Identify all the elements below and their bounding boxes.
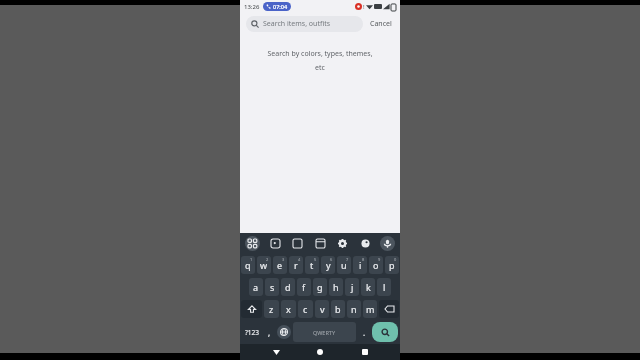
button[interactable]: Search [372,322,398,342]
button[interactable]: a [249,278,263,296]
staticText: n [351,303,357,315]
button[interactable]: b [331,300,345,318]
staticText: 3 [282,257,285,262]
staticText: 1 [250,257,253,262]
button[interactable]: Voice input [380,236,395,251]
staticText: e [277,259,283,271]
button[interactable]: Recents [356,344,374,360]
button[interactable]: Change language [277,325,291,339]
staticText: ! [363,3,365,11]
button[interactable]: ?123 [242,322,261,342]
button[interactable]: o [369,256,383,274]
staticText: d [285,281,291,293]
button[interactable]: g [313,278,327,296]
staticText: 0 [394,257,397,262]
button[interactable]: Themes [358,236,373,251]
button[interactable]: Shift [241,300,262,318]
staticText: x [286,303,291,315]
button[interactable]: v [315,300,329,318]
button[interactable]: GIF [290,236,305,251]
staticText: 4 [298,257,301,262]
button[interactable]: d [281,278,295,296]
button[interactable]: p [385,256,399,274]
staticText: l [383,281,386,293]
staticText: ?123 [245,328,259,337]
button[interactable]: Search items, outfits [246,16,363,32]
staticText: p [389,259,395,271]
button[interactable]: Emoji [263,322,275,342]
staticText: etc [315,63,325,73]
staticText: Search items, outfits [263,19,331,29]
button[interactable]: x [281,300,296,318]
staticText: 8 [362,257,365,262]
button[interactable]: u [337,256,351,274]
staticText: s [270,281,275,293]
staticText: c [303,303,308,315]
button[interactable]: Cancel [368,17,394,31]
button[interactable]: Home [311,344,329,360]
button[interactable]: c [298,300,313,318]
button[interactable]: w [257,256,271,274]
staticText: g [317,281,323,293]
staticText: q [245,259,251,271]
staticText: b [335,303,341,315]
staticText: QWERTY [313,329,336,336]
button[interactable]: Sticker [268,236,283,251]
staticText: k [366,281,371,293]
staticText: Cancel [370,19,392,29]
button[interactable]: m [363,300,377,318]
button[interactable]: n [347,300,361,318]
staticText: w [260,259,268,271]
button[interactable]: Back [267,344,285,360]
staticText: a [253,281,259,293]
staticText: y [326,259,331,271]
button[interactable]: y [321,256,335,274]
staticText: r [294,259,298,271]
button[interactable]: l [377,278,391,296]
button[interactable]: h [329,278,343,296]
staticText: 9 [378,257,381,262]
staticText: 13:26 [244,3,260,11]
staticText: h [333,281,339,293]
button[interactable]: r [289,256,303,274]
staticText: j [351,281,354,293]
button[interactable]: j [345,278,359,296]
button[interactable]: k [361,278,375,296]
staticText: u [341,259,347,271]
staticText: m [366,303,375,315]
button[interactable]: f [297,278,311,296]
button[interactable]: t [305,256,319,274]
button[interactable]: Apps [245,236,260,251]
button[interactable]: q [241,256,255,274]
staticText: o [373,259,379,271]
staticText: t [310,259,314,271]
button[interactable]: Clipboard [313,236,328,251]
button[interactable]: Backspace [379,300,399,318]
staticText: f [302,281,306,293]
button[interactable]: s [265,278,279,296]
staticText: z [269,303,274,315]
staticText: . [363,327,366,338]
staticText: 6 [330,257,333,262]
button[interactable]: . [358,322,370,342]
staticText: i [359,259,362,271]
staticText: 5 [314,257,317,262]
staticText: v [320,303,325,315]
staticText: 07:04 [273,3,288,10]
button[interactable]: e [273,256,287,274]
button[interactable]: i [353,256,367,274]
staticText: , [268,327,271,338]
button[interactable]: QWERTY [293,322,356,342]
staticText: 7 [346,257,349,262]
button[interactable]: z [264,300,279,318]
staticText: 2 [266,257,269,262]
button[interactable]: Settings [335,236,350,251]
staticText: Search by colors, types, themes, [267,49,373,59]
